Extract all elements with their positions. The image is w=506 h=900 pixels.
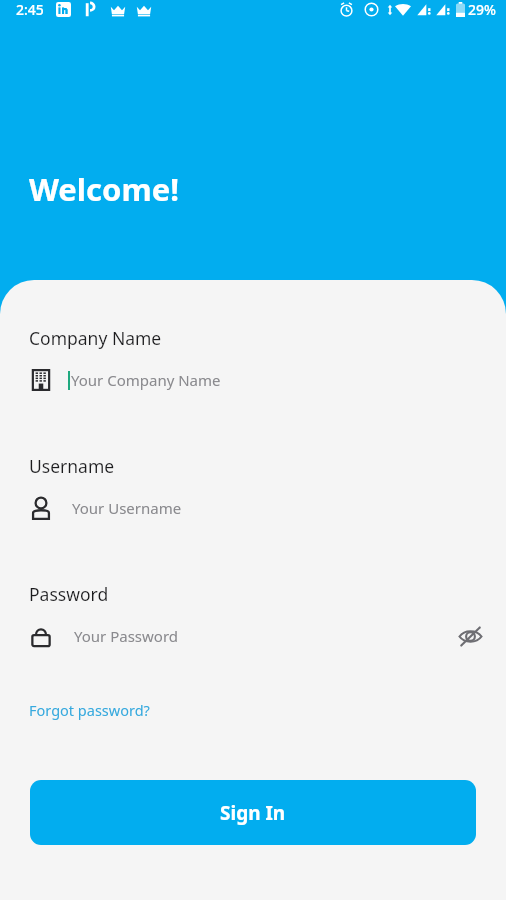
staticText: Welcome! — [29, 168, 179, 210]
staticText: Your Company Name — [71, 370, 221, 390]
staticText: 29% — [468, 0, 496, 19]
button[interactable]: Show password — [448, 620, 492, 652]
staticText: Username — [29, 454, 115, 478]
button[interactable]: Your Username — [0, 492, 506, 524]
button[interactable]: Forgot password? — [29, 698, 150, 722]
staticText: Your Password — [74, 626, 179, 646]
button[interactable]: Sign In — [30, 780, 476, 845]
staticText: Forgot password? — [29, 700, 150, 720]
staticText: Password — [29, 582, 109, 606]
button[interactable]: Your Password — [0, 620, 506, 652]
staticText: 2:45 — [16, 0, 44, 19]
staticText: Company Name — [29, 326, 162, 350]
staticText: Sign In — [220, 800, 286, 826]
button[interactable]: Your Company Name — [0, 364, 506, 396]
staticText: Your Username — [72, 498, 182, 518]
